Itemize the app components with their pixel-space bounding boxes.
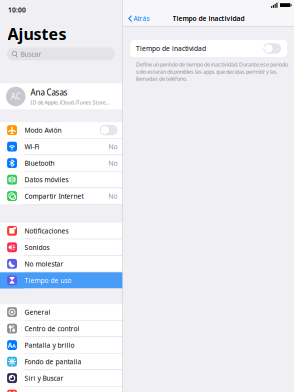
staticText: Atrás <box>133 14 149 23</box>
button[interactable]: Tiempo de uso <box>0 272 122 289</box>
staticText: Fondo de pantalla <box>24 357 81 366</box>
button[interactable]: AC <box>0 83 122 109</box>
button[interactable]: Face ID y código <box>0 387 122 392</box>
staticText: Ana Casas <box>30 87 67 98</box>
staticText: Buscar <box>20 50 41 58</box>
staticText: No <box>108 159 117 168</box>
staticText: Datos móviles <box>24 175 68 184</box>
staticText: No <box>108 142 117 151</box>
button[interactable]: Datos móviles <box>0 172 122 188</box>
button[interactable]: Fondo de pantalla <box>0 354 122 370</box>
button[interactable]: Atrás <box>123 12 154 25</box>
staticText: Wi-Fi <box>24 142 39 151</box>
staticText: Define un periodo de tiempo de inactivid… <box>136 61 288 82</box>
staticText: ID de Apple, iCloud, iTunes Store… <box>30 99 109 106</box>
button[interactable]: Sonidos <box>0 239 122 256</box>
staticText: No <box>108 192 117 201</box>
staticText: General <box>24 308 50 317</box>
button[interactable]: Notificaciones <box>0 223 122 239</box>
staticText: Tiempo de inactividad <box>172 14 244 23</box>
staticText: Ajustes <box>7 23 66 44</box>
button[interactable]: Compartir Internet <box>0 188 122 205</box>
staticText: Modo Avión <box>24 126 61 135</box>
button[interactable]: Centro de control <box>0 321 122 337</box>
staticText: AC <box>11 91 21 102</box>
staticText: Pantalla y brillo <box>24 341 74 350</box>
button[interactable]: Tiempo de inactividad <box>130 40 287 57</box>
staticText: Tiempo de inactividad <box>136 44 206 53</box>
staticText: Centro de control <box>24 324 79 333</box>
staticText: Notificaciones <box>24 226 68 235</box>
staticText: No molestar <box>24 259 63 268</box>
staticText: Tiempo de uso <box>24 276 71 285</box>
staticText: 10:00 <box>8 6 26 14</box>
button[interactable]: Pantalla y brillo <box>0 337 122 354</box>
button[interactable]: No molestar <box>0 256 122 272</box>
button[interactable]: General <box>0 304 122 321</box>
staticText: Sonidos <box>24 243 49 252</box>
staticText: Bluetooth <box>24 159 54 168</box>
button[interactable]: Modo Avión <box>0 122 122 139</box>
staticText: Siri y Buscar <box>24 374 63 383</box>
button[interactable]: Wi-Fi <box>0 139 122 155</box>
staticText: Compartir Internet <box>24 192 83 201</box>
button[interactable]: Siri y Buscar <box>0 370 122 387</box>
button[interactable]: Bluetooth <box>0 155 122 172</box>
